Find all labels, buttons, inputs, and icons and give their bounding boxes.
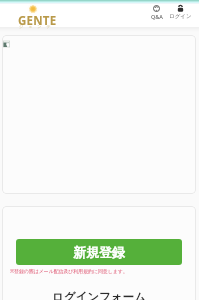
button[interactable]: Login (168, 5, 192, 20)
staticText: 新規登録 (73, 244, 125, 260)
button[interactable]: 新規登録 (16, 239, 182, 265)
other: Q and A (153, 5, 160, 12)
staticText: GENTE (18, 13, 57, 29)
button[interactable]: GENTE home (14, 2, 58, 29)
button[interactable]: Q and A (147, 5, 166, 20)
other: Login (177, 5, 184, 12)
staticText: ログインフォーム (52, 290, 146, 300)
staticText: Q&A (151, 13, 163, 20)
staticText: ジェンテ (19, 24, 56, 29)
staticText: ログイン (169, 13, 192, 20)
staticText: ※登録の際はメール配信及び利用規約に同意します。 (10, 268, 128, 275)
